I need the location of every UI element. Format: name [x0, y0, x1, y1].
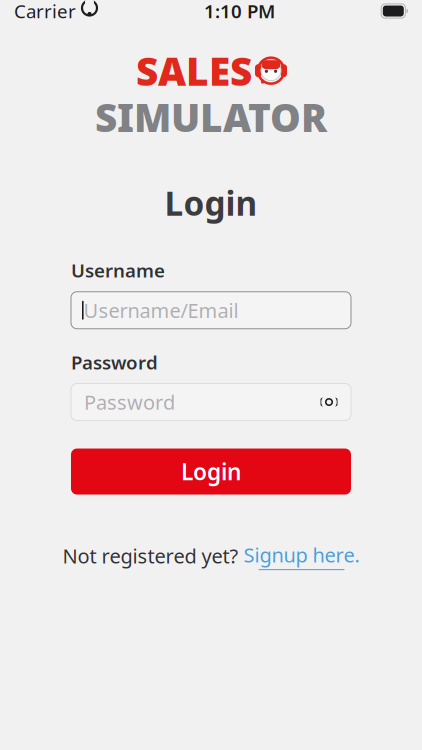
staticText: Login	[181, 456, 241, 487]
staticText: Not registered yet?	[62, 542, 238, 569]
staticText: SIMULATOR	[95, 91, 327, 143]
staticText: Password	[71, 350, 158, 375]
staticText: 1:10 PM	[204, 0, 275, 23]
staticText: Username/Email	[84, 297, 239, 324]
staticText: Password	[84, 389, 175, 415]
button[interactable]: Signup here.	[243, 541, 359, 570]
staticText: Signup here.	[243, 541, 359, 568]
button[interactable]: Username/Email	[71, 292, 351, 329]
staticText: Username	[71, 258, 165, 283]
staticText: SALES	[136, 45, 252, 96]
staticText: Carrier	[14, 0, 76, 23]
staticText: Login	[164, 181, 257, 225]
button[interactable]: Show password	[316, 389, 342, 415]
button[interactable]: Login	[71, 448, 351, 494]
